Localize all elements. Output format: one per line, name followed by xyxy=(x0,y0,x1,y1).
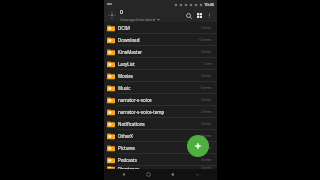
button[interactable]: Pictures xyxy=(104,142,217,153)
button[interactable]: Music xyxy=(104,82,217,93)
staticText: 10:45 xyxy=(204,2,215,7)
button[interactable]: LazyList xyxy=(104,58,217,69)
staticText: 0 items xyxy=(201,122,212,126)
button[interactable]: Recents xyxy=(167,169,178,180)
button[interactable]: DCIM xyxy=(104,22,217,33)
staticText: Podcasts xyxy=(118,157,201,163)
button[interactable]: narrator-s-voice xyxy=(104,94,217,105)
staticText: 21 items xyxy=(199,146,212,150)
button[interactable]: Menu xyxy=(192,169,203,180)
staticText: 3 items xyxy=(201,166,212,169)
button[interactable]: Add xyxy=(187,135,209,157)
staticText: 9 items xyxy=(201,98,212,102)
button[interactable]: OtherX xyxy=(104,130,217,141)
button[interactable]: narrator-s-voice-temp xyxy=(104,106,217,117)
staticText: narrator-s-voice-temp xyxy=(118,109,201,115)
button[interactable]: More options xyxy=(205,11,214,20)
staticText: Music xyxy=(118,85,201,91)
staticText: 4 items xyxy=(201,134,212,138)
button[interactable]: Search xyxy=(183,10,194,21)
staticText: 1 item xyxy=(203,62,212,66)
button[interactable]: Notifications xyxy=(104,118,217,129)
staticText: Ringtones xyxy=(118,166,201,169)
button[interactable]: Grid view xyxy=(194,10,205,21)
button[interactable]: Navigation drawer xyxy=(107,10,117,20)
staticText: Pictures xyxy=(118,145,199,151)
staticText: 3 items xyxy=(201,50,212,54)
staticText: Movies xyxy=(118,73,201,79)
staticText: 0 xyxy=(120,9,123,16)
staticText: LazyList xyxy=(118,61,203,67)
staticText: 2 items xyxy=(201,26,212,30)
button[interactable]: Home xyxy=(143,169,154,180)
staticText: OtherX xyxy=(118,133,201,139)
staticText: 2 items xyxy=(201,110,212,114)
staticText: 0 items xyxy=(201,158,212,162)
staticText: narrator-s-voice xyxy=(118,97,201,103)
staticText: DCIM xyxy=(118,25,201,31)
button[interactable]: Ringtones xyxy=(104,166,217,169)
staticText: KineMaster xyxy=(118,49,201,55)
staticText: 6 items xyxy=(201,86,212,90)
staticText: 14 items xyxy=(199,38,212,42)
button[interactable]: Movies xyxy=(104,70,217,81)
staticText: Notifications xyxy=(118,121,201,127)
button[interactable]: Back xyxy=(118,169,129,180)
button[interactable]: Download xyxy=(104,34,217,45)
staticText: 0 items xyxy=(201,74,212,78)
button[interactable]: KineMaster xyxy=(104,46,217,57)
button[interactable]: Podcasts xyxy=(104,154,217,165)
staticText: /storage/emulated xyxy=(120,17,156,22)
staticText: Download xyxy=(118,37,199,43)
